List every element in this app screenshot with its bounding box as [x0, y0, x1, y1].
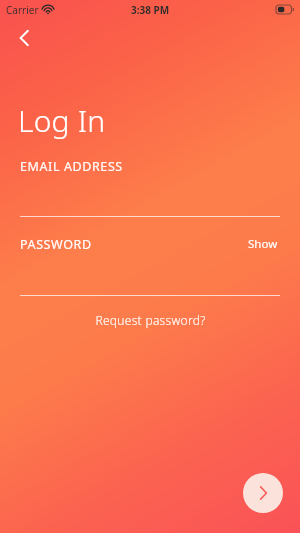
- staticText: 3:38 PM: [131, 3, 170, 17]
- button[interactable]: Show: [246, 234, 280, 254]
- staticText: Log In: [18, 100, 106, 141]
- staticText: PASSWORD: [20, 236, 92, 253]
- staticText: Carrier: [6, 3, 39, 17]
- button[interactable]: Continue: [243, 473, 283, 513]
- staticText: Show: [248, 236, 278, 252]
- button[interactable]: Request password?: [0, 308, 300, 332]
- staticText: Request password?: [95, 312, 206, 328]
- button[interactable]: Back: [6, 20, 42, 56]
- staticText: EMAIL ADDRESS: [20, 158, 123, 175]
